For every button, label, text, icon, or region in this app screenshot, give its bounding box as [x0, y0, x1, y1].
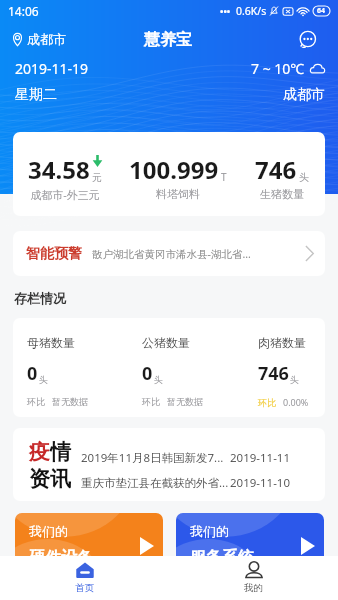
staticText: •••	[220, 5, 231, 17]
staticText: 重庆市垫江县在截获的外省...	[81, 475, 229, 491]
staticText: 头	[299, 171, 309, 184]
staticText: 暂无数据	[167, 396, 203, 407]
button[interactable]: 疫	[13, 428, 325, 501]
staticText: 元	[92, 171, 102, 184]
staticText: 环比	[27, 396, 45, 407]
staticText: 2019-11-19	[15, 59, 89, 78]
staticText: 我们的	[29, 523, 68, 539]
button[interactable]: 34.58	[13, 132, 325, 216]
staticText: 头	[39, 374, 48, 385]
button[interactable]: 首页	[0, 556, 169, 600]
staticText: 0	[27, 361, 38, 386]
staticText: 环比	[258, 397, 276, 408]
staticText: 0.6K/s	[236, 4, 267, 18]
button[interactable]: 母猪数量	[13, 318, 325, 417]
staticText: 头	[154, 374, 163, 385]
staticText: 2019-11-10	[230, 475, 291, 491]
staticText: 料塔饲料	[156, 187, 200, 201]
button[interactable]: 我们的	[15, 513, 163, 583]
staticText: 成都市	[283, 86, 325, 104]
staticText: 存栏情况	[14, 290, 66, 306]
staticText: 公猪数量	[142, 335, 190, 350]
staticText: 母猪数量	[27, 335, 75, 350]
staticText: 64	[317, 6, 326, 16]
staticText: 746	[258, 361, 289, 386]
staticText: 14:06	[8, 3, 39, 19]
staticText: 慧养宝	[144, 30, 192, 50]
staticText: 成都市-外三元	[30, 187, 100, 202]
staticText: 746	[255, 153, 297, 186]
staticText: 成都市	[27, 31, 66, 47]
staticText: 0	[142, 361, 153, 386]
staticText: 我们的	[190, 523, 229, 539]
staticText: 环比	[142, 396, 160, 407]
staticText: 我的	[244, 582, 263, 594]
staticText: 生猪数量	[260, 187, 304, 201]
button[interactable]: 我的	[169, 556, 338, 600]
button[interactable]: Messages	[297, 29, 317, 49]
staticText: 硬件设备	[29, 548, 93, 568]
staticText: 7 ~ 10℃	[251, 59, 305, 78]
button[interactable]: 我们的	[176, 513, 324, 583]
staticText: 首页	[75, 582, 94, 594]
staticText: 星期二	[15, 86, 57, 104]
staticText: 资讯	[29, 466, 71, 492]
staticText: 0.00%	[283, 396, 309, 408]
staticText: 100.999	[129, 153, 219, 186]
staticText: 头	[290, 374, 299, 385]
staticText: 疫	[29, 439, 50, 465]
staticText: 情	[50, 439, 71, 465]
staticText: 散户湖北省黄冈市浠水县-湖北省...	[92, 247, 301, 261]
button[interactable]: 智能预警	[13, 231, 325, 276]
staticText: 2019-11-11	[230, 450, 291, 466]
staticText: 智能预警	[26, 245, 82, 263]
staticText: 肉猪数量	[258, 335, 306, 350]
staticText: T	[221, 170, 227, 184]
staticText: 服务系统	[190, 548, 254, 568]
staticText: 34.58	[28, 153, 90, 186]
staticText: 暂无数据	[52, 396, 88, 407]
staticText: 2019年11月8日韩国新发7...	[81, 450, 224, 466]
button[interactable]: 成都市	[10, 28, 68, 50]
